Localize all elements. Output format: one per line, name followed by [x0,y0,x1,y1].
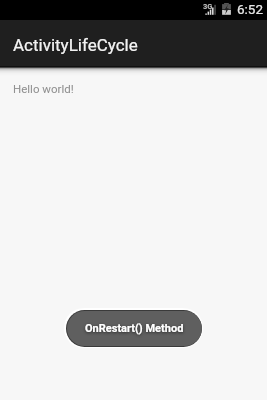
staticText: OnRestart() Method [85,322,184,335]
other: Battery charging [221,1,232,15]
staticText: Hello world! [13,82,74,95]
staticText: 3G [203,2,213,11]
staticText: ActivityLifeCycle [13,35,138,55]
staticText: 6:52 [237,1,264,17]
other: Mobile signal 3G [203,1,216,15]
button[interactable]: OnRestart() Method [64,308,203,348]
